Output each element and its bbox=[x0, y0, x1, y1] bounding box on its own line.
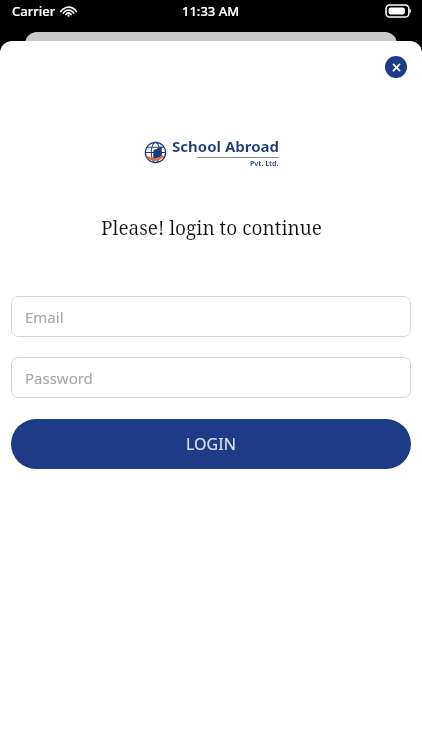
staticText: Email bbox=[25, 307, 64, 327]
button[interactable]: Close bbox=[385, 56, 407, 78]
staticText: Pvt. Ltd. bbox=[250, 159, 279, 169]
staticText: Password bbox=[25, 368, 93, 388]
staticText: School Abroad bbox=[172, 136, 279, 156]
staticText: LOGIN bbox=[186, 433, 236, 455]
button[interactable]: Email bbox=[11, 296, 411, 337]
staticText: 11:33 AM bbox=[182, 2, 240, 20]
button[interactable]: LOGIN bbox=[11, 419, 411, 469]
button[interactable]: Password bbox=[11, 357, 411, 398]
staticText: Please! login to continue bbox=[101, 215, 322, 241]
staticText: Carrier bbox=[12, 2, 56, 20]
